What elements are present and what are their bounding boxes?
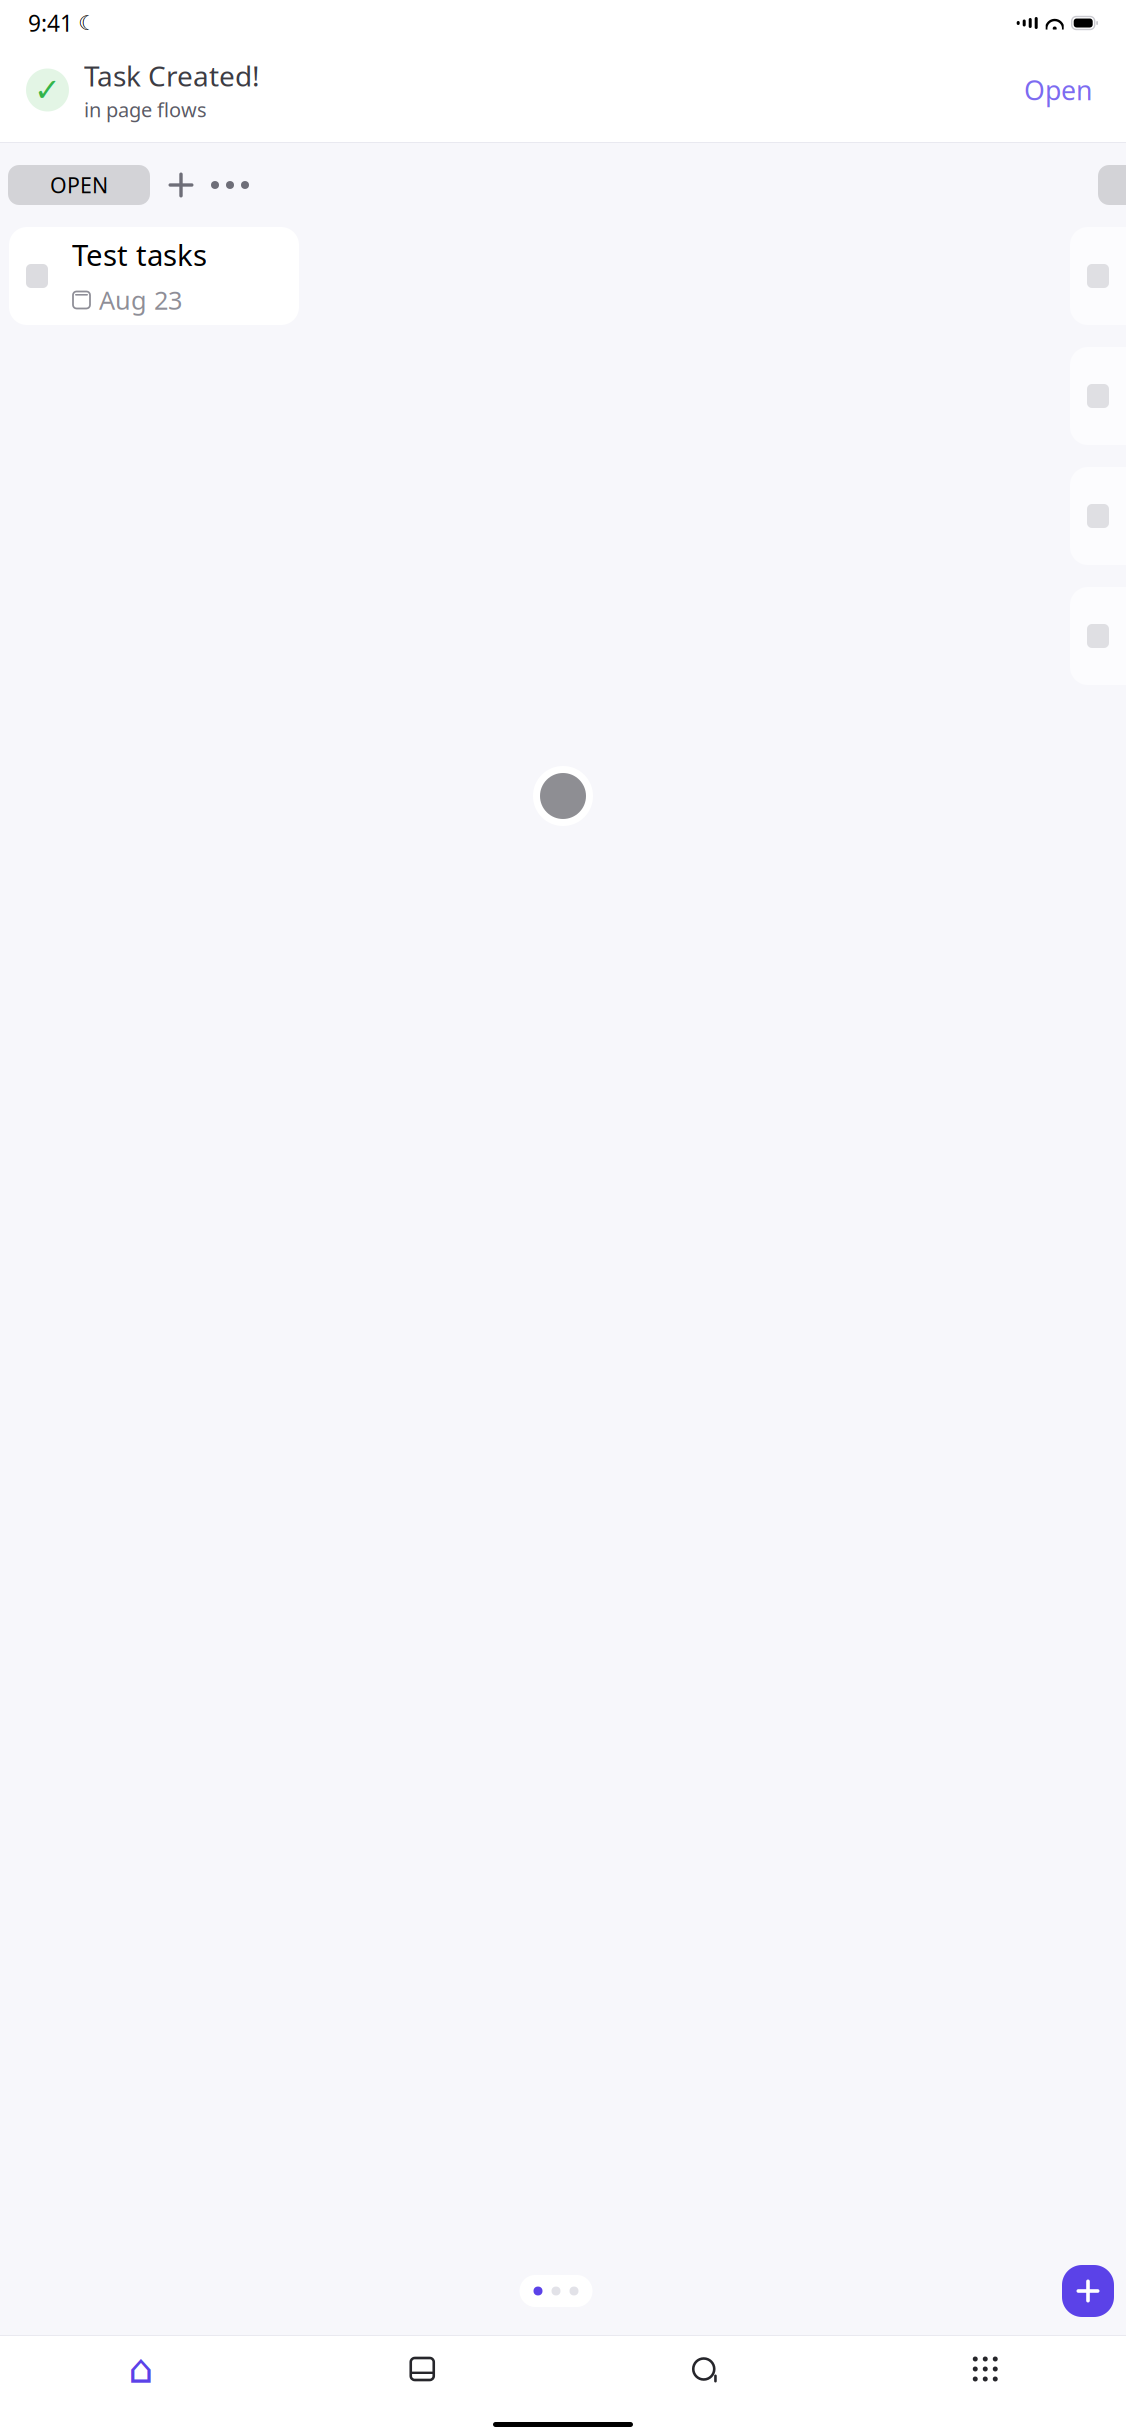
button[interactable]: Add [158, 163, 204, 207]
button[interactable]: Apps [844, 2336, 1126, 2402]
button[interactable]: Inbox [281, 2336, 563, 2402]
staticText: Task Created! [84, 57, 260, 94]
staticText: Open [1024, 72, 1092, 108]
staticText: OPEN [50, 171, 108, 199]
staticText: ✓ [34, 72, 61, 108]
button[interactable]: Test tasks [9, 227, 299, 325]
staticText: ☾ [78, 12, 96, 34]
button[interactable]: Search [563, 2336, 844, 2402]
staticText: in page flows [84, 96, 207, 123]
staticText: ⌂ [128, 2346, 153, 2392]
staticText: 9:41 [28, 8, 73, 38]
staticText: Test tasks [72, 235, 207, 274]
staticText: Aug 23 [99, 283, 182, 317]
button[interactable]: OPEN [8, 165, 150, 205]
button[interactable]: Home [0, 2336, 281, 2402]
button[interactable]: Open [1016, 62, 1100, 118]
button[interactable]: More [204, 163, 256, 207]
button[interactable]: New task [1062, 2265, 1114, 2317]
